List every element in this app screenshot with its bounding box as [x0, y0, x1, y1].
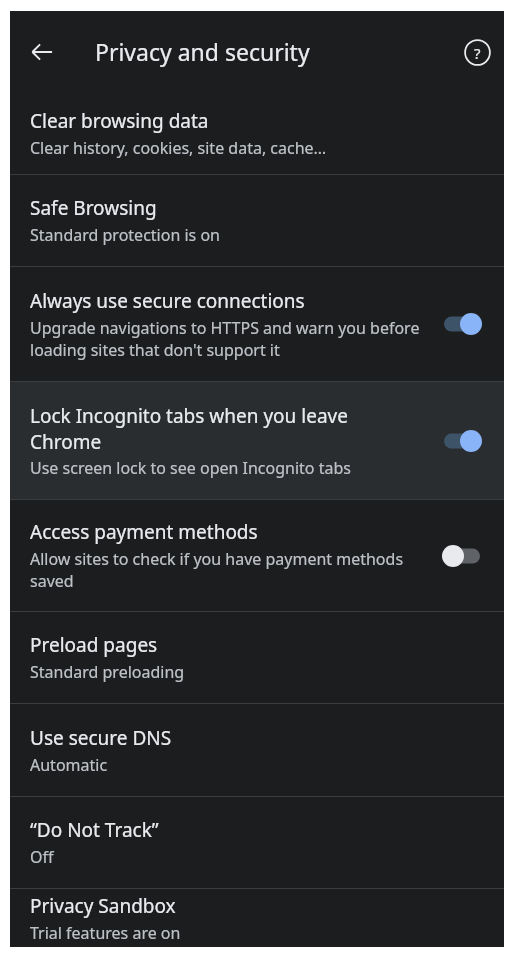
button[interactable]: Toggle on [434, 304, 490, 344]
button[interactable]: “Do Not Track” [10, 797, 504, 888]
staticText: Access payment methods [30, 519, 258, 545]
button[interactable]: Toggle on [434, 421, 490, 461]
staticText: Lock Incognito tabs when you leave Chrom… [30, 403, 420, 454]
staticText: Standard preloading [30, 661, 185, 683]
button[interactable]: Back [18, 28, 66, 76]
staticText: Standard protection is on [30, 224, 220, 246]
button[interactable]: Access payment methods [10, 500, 504, 611]
staticText: Automatic [30, 754, 108, 776]
staticText: Privacy Sandbox [30, 893, 176, 919]
staticText: Use secure DNS [30, 725, 172, 751]
staticText: Use screen lock to see open Incognito ta… [30, 457, 351, 479]
staticText: Always use secure connections [30, 288, 305, 314]
staticText: Clear browsing data [30, 108, 209, 134]
button[interactable]: Help [453, 28, 501, 76]
staticText: Allow sites to check if you have payment… [30, 548, 420, 592]
staticText: Off [30, 846, 54, 868]
button[interactable]: Lock Incognito tabs when you leave Chrom… [10, 382, 504, 499]
staticText: Preload pages [30, 632, 158, 658]
staticText: Safe Browsing [30, 195, 157, 221]
staticText: Clear history, cookies, site data, cache… [30, 137, 327, 159]
staticText: ? [474, 43, 481, 63]
staticText: Privacy and security [95, 36, 310, 67]
button[interactable]: Preload pages [10, 612, 504, 703]
button[interactable]: Toggle off [434, 536, 490, 576]
staticText: Upgrade navigations to HTTPS and warn yo… [30, 317, 420, 361]
button[interactable]: Safe Browsing [10, 175, 504, 266]
button[interactable]: Use secure DNS [10, 704, 504, 796]
button[interactable]: Always use secure connections [10, 267, 504, 381]
button[interactable]: Clear browsing data [10, 92, 504, 174]
button[interactable]: Privacy Sandbox [10, 889, 504, 947]
staticText: “Do Not Track” [30, 817, 159, 843]
staticText: Trial features are on [30, 922, 181, 944]
